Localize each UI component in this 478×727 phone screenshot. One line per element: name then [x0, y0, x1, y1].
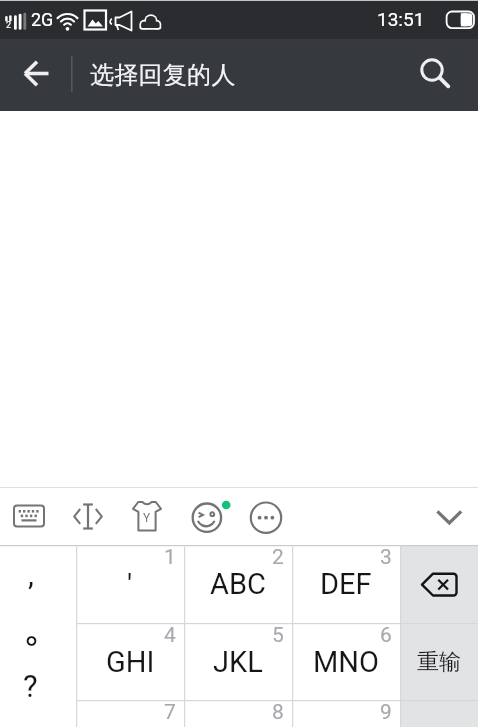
- button[interactable]: [400, 545, 478, 623]
- button[interactable]: [125, 494, 169, 538]
- staticText: 重输: [417, 648, 461, 676]
- button[interactable]: 重输: [400, 623, 478, 700]
- button[interactable]: [8, 47, 66, 103]
- button[interactable]: MNO: [292, 623, 400, 700]
- button[interactable]: [184, 494, 228, 538]
- button[interactable]: JKL: [184, 623, 292, 700]
- staticText: MNO: [313, 645, 379, 679]
- staticText: 3: [380, 545, 392, 569]
- button[interactable]: [66, 494, 110, 538]
- button[interactable]: DEF: [292, 545, 400, 623]
- staticText: 2G: [31, 9, 54, 30]
- button[interactable]: [427, 494, 471, 538]
- staticText: 1: [164, 545, 176, 569]
- button[interactable]: [0, 611, 76, 661]
- staticText: 13:51: [377, 8, 425, 30]
- staticText: 8: [272, 700, 284, 724]
- staticText: GHI: [106, 645, 155, 679]
- staticText: ?: [23, 668, 38, 704]
- staticText: 4: [164, 623, 176, 647]
- button[interactable]: [404, 43, 468, 107]
- staticText: 6: [380, 623, 392, 647]
- staticText: JKL: [213, 645, 263, 679]
- button[interactable]: [184, 700, 292, 727]
- staticText: 7: [164, 700, 176, 724]
- staticText: 5: [272, 623, 284, 647]
- staticText: Y: [143, 511, 151, 525]
- staticText: 2: [6, 20, 12, 31]
- button[interactable]: [76, 700, 184, 727]
- button[interactable]: ': [76, 545, 184, 623]
- button[interactable]: [0, 665, 76, 720]
- staticText: 9: [380, 700, 392, 724]
- button[interactable]: [0, 545, 76, 601]
- button[interactable]: [292, 700, 400, 727]
- button[interactable]: ABC: [184, 545, 292, 623]
- staticText: 选择回复的人: [90, 60, 236, 90]
- staticText: 2: [272, 545, 284, 569]
- button[interactable]: [244, 494, 288, 538]
- button[interactable]: GHI: [76, 623, 184, 700]
- staticText: ABC: [210, 567, 266, 601]
- staticText: ': [127, 567, 133, 602]
- staticText: DEF: [320, 567, 372, 601]
- staticText: ,: [28, 557, 34, 592]
- button[interactable]: [7, 494, 51, 538]
